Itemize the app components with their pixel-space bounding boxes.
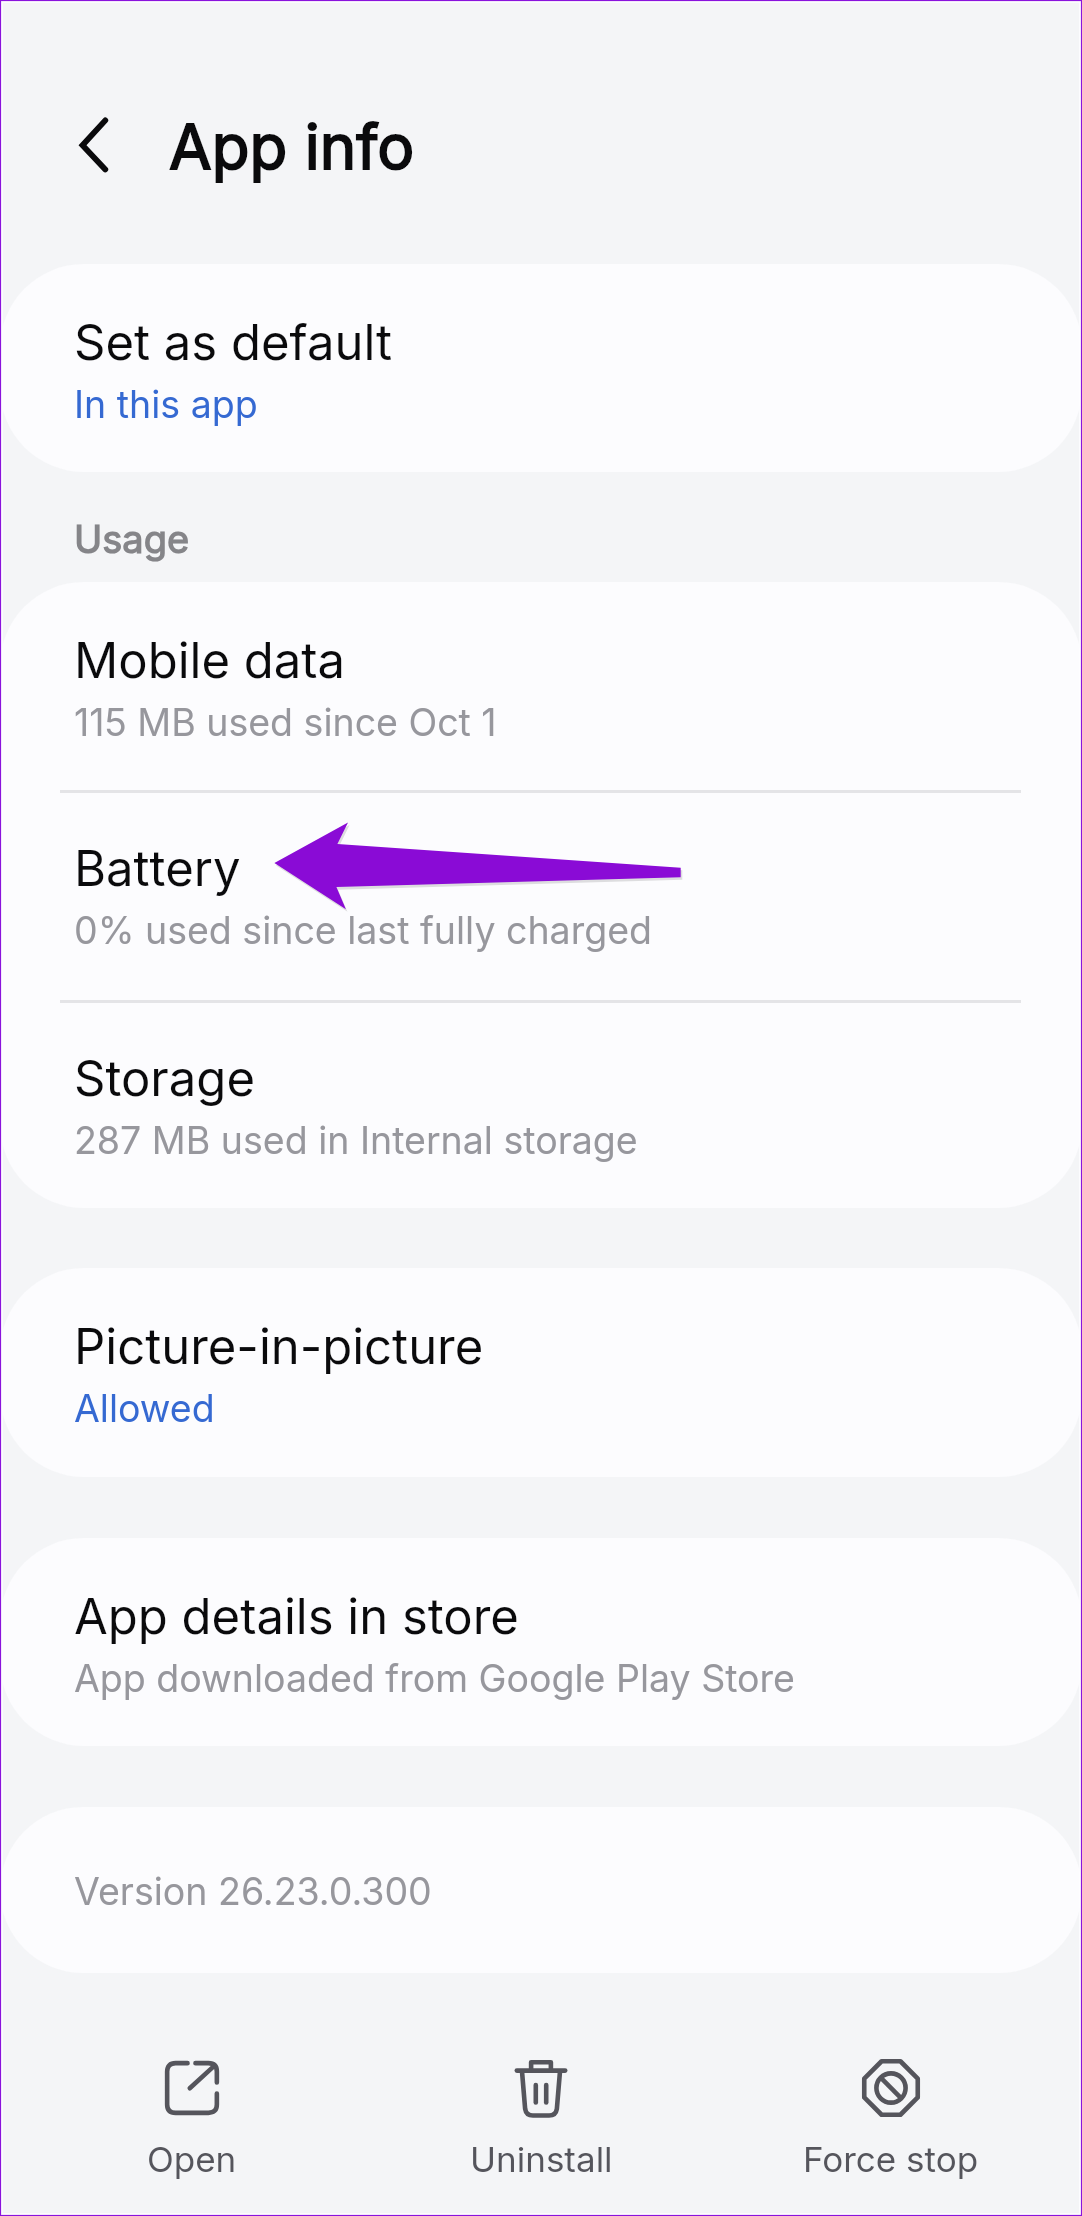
button[interactable]: Uninstall xyxy=(431,2030,651,2190)
button[interactable]: App details in store xyxy=(0,1538,1082,1746)
staticText: Version 26.23.0.300 xyxy=(74,1869,432,1914)
button[interactable]: Picture-in-picture xyxy=(0,1268,1082,1477)
button[interactable]: Battery xyxy=(0,790,1082,1000)
button[interactable]: Set as default xyxy=(0,264,1082,472)
staticText: Uninstall xyxy=(470,2138,613,2180)
staticText: App details in store xyxy=(74,1587,519,1646)
button[interactable]: Mobile data xyxy=(0,582,1082,790)
staticText: Force stop xyxy=(803,2138,979,2180)
staticText: Storage xyxy=(74,1049,255,1108)
staticText: 115 MB used since Oct 1 xyxy=(74,700,497,745)
staticText: Battery xyxy=(74,839,241,898)
staticText: In this app xyxy=(74,382,258,427)
staticText: App info xyxy=(169,109,415,184)
staticText: Allowed xyxy=(74,1386,215,1431)
button[interactable]: Back xyxy=(62,112,126,176)
staticText: Set as default xyxy=(74,313,393,372)
staticText: App downloaded from Google Play Store xyxy=(74,1656,795,1701)
staticText: Picture-in-picture xyxy=(74,1317,484,1376)
staticText: Open xyxy=(147,2138,237,2180)
staticText: Mobile data xyxy=(74,631,346,690)
button[interactable]: Force stop xyxy=(781,2030,1001,2190)
staticText: Usage xyxy=(74,516,190,562)
staticText: 287 MB used in Internal storage xyxy=(74,1118,638,1163)
button[interactable]: Open xyxy=(82,2030,302,2190)
button[interactable]: Storage xyxy=(0,1000,1082,1208)
staticText: 0% used since last fully charged xyxy=(74,908,652,953)
